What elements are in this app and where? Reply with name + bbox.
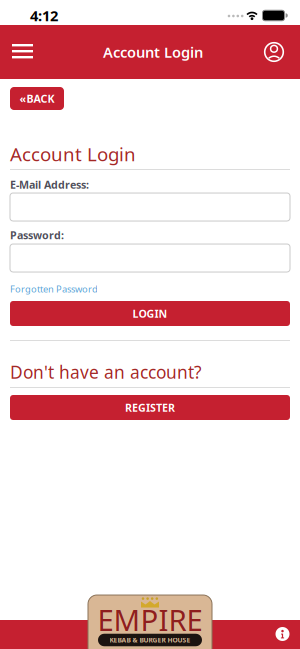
button[interactable]: «BACK	[10, 87, 64, 110]
button[interactable]	[0, 25, 45, 79]
staticText: E-Mail Address:	[10, 177, 89, 192]
staticText: Don't have an account?	[10, 360, 202, 383]
button[interactable]: LOGIN	[10, 301, 290, 326]
button[interactable]	[259, 37, 289, 67]
staticText: Account Login	[103, 42, 203, 62]
button[interactable]	[274, 626, 290, 642]
button[interactable]: EMPIRE	[88, 595, 212, 649]
button[interactable]: REGISTER	[10, 395, 290, 420]
staticText: REGISTER	[125, 400, 175, 415]
button[interactable]: Forgotten Password	[10, 283, 98, 295]
staticText: 4:12	[30, 6, 58, 25]
staticText: Password:	[10, 228, 64, 242]
staticText: EMPIRE	[97, 600, 202, 639]
staticText: LOGIN	[132, 306, 167, 321]
staticText: «BACK	[19, 91, 54, 106]
staticText: Account Login	[10, 142, 136, 166]
staticText: Forgotten Password	[10, 283, 98, 295]
staticText: KEBAB & BURGER HOUSE	[109, 636, 190, 644]
